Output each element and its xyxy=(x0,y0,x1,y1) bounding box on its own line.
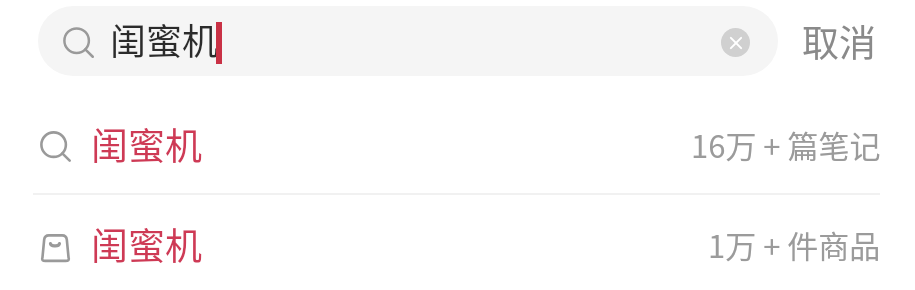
button[interactable]: 取消 xyxy=(793,6,885,76)
button[interactable]: 闺蜜机 xyxy=(0,195,915,290)
staticText: 1万 + 件商品 xyxy=(708,222,881,267)
staticText: 闺蜜机 xyxy=(91,117,202,171)
button[interactable]: 闺蜜机 xyxy=(0,95,915,193)
staticText: 闺蜜机 xyxy=(91,217,202,271)
staticText: 16万 + 篇笔记 xyxy=(691,122,881,167)
button[interactable]: Clear search text xyxy=(721,28,750,57)
staticText: 闺蜜机 xyxy=(110,13,219,65)
staticText: 取消 xyxy=(802,14,876,68)
button[interactable]: 闺蜜机 xyxy=(38,6,778,76)
